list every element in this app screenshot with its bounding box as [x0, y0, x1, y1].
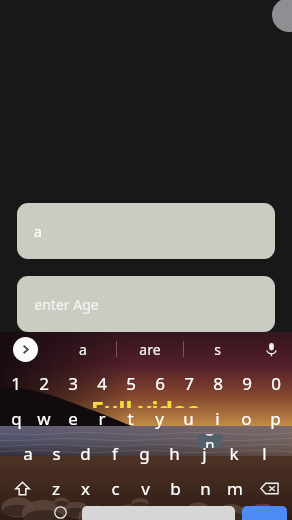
button[interactable]: l: [249, 436, 279, 471]
button[interactable]: f: [100, 436, 129, 471]
button[interactable]: 6: [145, 366, 174, 401]
staticText: m: [227, 477, 243, 500]
staticText: enter Age: [34, 295, 99, 314]
button[interactable]: a: [17, 203, 275, 259]
staticText: 3: [68, 372, 78, 395]
button[interactable]: z: [41, 471, 70, 506]
staticText: n: [200, 477, 211, 500]
staticText: 1: [11, 372, 21, 395]
button[interactable]: 9: [232, 366, 261, 401]
staticText: a: [34, 222, 42, 241]
button[interactable]: h: [159, 436, 189, 471]
button[interactable]: Expand suggestions: [0, 332, 50, 366]
button[interactable]: q: [2, 401, 30, 436]
staticText: a: [79, 340, 87, 359]
staticText: 0: [271, 372, 281, 395]
button[interactable]: Emoji: [43, 506, 78, 520]
button[interactable]: Voice input: [250, 332, 292, 366]
staticText: s: [52, 442, 61, 465]
button[interactable]: 1: [2, 366, 30, 401]
button[interactable]: b: [160, 471, 190, 506]
button[interactable]: 3: [58, 366, 87, 401]
staticText: f: [112, 442, 118, 465]
button[interactable]: g: [129, 436, 159, 471]
staticText: i: [215, 407, 220, 430]
staticText: 7: [184, 372, 194, 395]
button[interactable]: 5: [116, 366, 145, 401]
button[interactable]: j: [189, 436, 219, 471]
button[interactable]: 8: [203, 366, 232, 401]
staticText: y: [155, 407, 164, 430]
staticText: r: [98, 407, 106, 430]
button[interactable]: e: [58, 401, 87, 436]
button[interactable]: p: [261, 401, 290, 436]
staticText: k: [229, 442, 239, 465]
button[interactable]: r: [87, 401, 116, 436]
button[interactable]: Enter: [242, 506, 287, 520]
staticText: 8: [213, 372, 223, 395]
button[interactable]: x: [70, 471, 100, 506]
staticText: t: [127, 407, 134, 430]
button[interactable]: s: [42, 436, 71, 471]
staticText: o: [241, 407, 252, 430]
staticText: d: [80, 442, 91, 465]
button[interactable]: y: [145, 401, 174, 436]
button[interactable]: v: [130, 471, 160, 506]
staticText: w: [37, 407, 51, 430]
button[interactable]: 0: [261, 366, 290, 401]
button[interactable]: w: [30, 401, 58, 436]
staticText: b: [170, 477, 181, 500]
staticText: e: [68, 407, 78, 430]
staticText: a: [23, 442, 33, 465]
staticText: n: [205, 434, 215, 448]
staticText: h: [169, 442, 180, 465]
button[interactable]: Shift: [3, 471, 41, 506]
button[interactable]: k: [219, 436, 249, 471]
staticText: z: [52, 477, 60, 500]
button[interactable]: 2: [30, 366, 58, 401]
staticText: 5: [126, 372, 136, 395]
staticText: s: [214, 340, 221, 359]
staticText: 9: [242, 372, 252, 395]
staticText: c: [111, 477, 120, 500]
staticText: 6: [155, 372, 165, 395]
staticText: p: [270, 407, 281, 430]
button[interactable]: a: [50, 332, 116, 366]
button[interactable]: d: [71, 436, 100, 471]
button[interactable]: s: [184, 332, 250, 366]
staticText: u: [183, 407, 194, 430]
staticText: j: [202, 442, 207, 465]
staticText: l: [262, 442, 267, 465]
button[interactable]: enter Age: [17, 276, 275, 332]
button[interactable]: n: [190, 471, 220, 506]
staticText: x: [81, 477, 90, 500]
button[interactable]: 7: [174, 366, 203, 401]
staticText: q: [11, 407, 22, 430]
button[interactable]: are: [117, 332, 183, 366]
button[interactable]: o: [232, 401, 261, 436]
staticText: v: [141, 477, 150, 500]
other: Bubble: [272, 0, 292, 32]
button[interactable]: 4: [87, 366, 116, 401]
button[interactable]: t: [116, 401, 145, 436]
button[interactable]: Symbols: [4, 506, 43, 520]
staticText: 2: [39, 372, 49, 395]
button[interactable]: Backspace: [250, 471, 289, 506]
button[interactable]: Space: [82, 506, 235, 520]
button[interactable]: m: [220, 471, 250, 506]
button[interactable]: u: [174, 401, 203, 436]
button[interactable]: a: [13, 436, 42, 471]
staticText: Full video: [91, 394, 201, 408]
button[interactable]: c: [100, 471, 130, 506]
staticText: 4: [97, 372, 107, 395]
button[interactable]: i: [203, 401, 232, 436]
staticText: are: [139, 340, 161, 359]
staticText: g: [139, 442, 150, 465]
